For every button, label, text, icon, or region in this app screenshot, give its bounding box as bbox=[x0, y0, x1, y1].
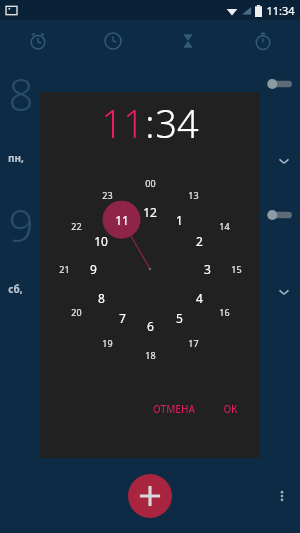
button[interactable]: 14 bbox=[213, 215, 235, 237]
staticText: 20 bbox=[71, 306, 82, 318]
staticText: 7 bbox=[119, 310, 126, 326]
button[interactable]: Expand bbox=[276, 284, 292, 300]
button[interactable]: 21 bbox=[53, 258, 75, 280]
staticText: 16 bbox=[219, 306, 230, 318]
staticText: 11 bbox=[115, 212, 129, 228]
staticText: : bbox=[145, 97, 155, 149]
staticText: 9 bbox=[8, 195, 34, 255]
button[interactable]: 17 bbox=[182, 332, 204, 354]
staticText: 10 bbox=[94, 233, 108, 249]
staticText: 8 bbox=[98, 290, 105, 306]
button[interactable]: 9 bbox=[0, 193, 300, 324]
staticText: 8 bbox=[8, 64, 34, 124]
staticText: 17 bbox=[188, 337, 199, 349]
button[interactable]: 1 bbox=[166, 207, 192, 233]
button[interactable]: 13 bbox=[182, 184, 204, 206]
staticText: 15 bbox=[231, 263, 242, 275]
button[interactable]: Toggle alarm bbox=[266, 78, 292, 90]
button[interactable]: More options bbox=[270, 484, 294, 508]
staticText: 4 bbox=[196, 290, 203, 306]
staticText: 18 bbox=[145, 349, 156, 361]
button[interactable]: 5 bbox=[166, 305, 192, 331]
button[interactable]: 6 bbox=[137, 313, 163, 339]
staticText: 12 bbox=[143, 204, 157, 220]
staticText: 11:34 bbox=[266, 3, 295, 18]
staticText: 6 bbox=[147, 318, 154, 334]
staticText: 14 bbox=[219, 220, 230, 232]
button[interactable]: 8 bbox=[88, 285, 114, 311]
button[interactable]: 34 bbox=[155, 97, 199, 149]
staticText: ОК bbox=[223, 402, 238, 416]
button[interactable]: 7 bbox=[109, 305, 135, 331]
staticText: 13 bbox=[188, 189, 199, 201]
staticText: 23 bbox=[102, 189, 113, 201]
staticText: 19 bbox=[102, 337, 113, 349]
button[interactable]: Timer bbox=[150, 20, 225, 62]
button[interactable]: 00 bbox=[139, 172, 161, 194]
button[interactable]: World clock bbox=[75, 20, 150, 62]
staticText: 22 bbox=[71, 220, 82, 232]
button[interactable]: 23 bbox=[96, 184, 118, 206]
button[interactable]: ОК bbox=[215, 396, 246, 422]
button[interactable]: 11 bbox=[101, 97, 145, 149]
staticText: 1 bbox=[176, 212, 183, 228]
button[interactable]: 4 bbox=[186, 285, 212, 311]
staticText: 00 bbox=[145, 177, 156, 189]
staticText: ОТМЕНА bbox=[153, 402, 195, 416]
button[interactable]: 22 bbox=[65, 215, 87, 237]
button[interactable]: 18 bbox=[139, 344, 161, 366]
staticText: 9 bbox=[90, 261, 97, 277]
button[interactable]: ОТМЕНА bbox=[145, 396, 203, 422]
staticText: сб, bbox=[8, 282, 23, 296]
button[interactable]: 11 bbox=[109, 207, 135, 233]
button[interactable]: Toggle alarm bbox=[266, 209, 292, 221]
button[interactable]: Add alarm bbox=[128, 474, 172, 518]
button[interactable]: 3 bbox=[194, 256, 220, 282]
button[interactable]: Alarm bbox=[0, 20, 75, 62]
staticText: 5 bbox=[176, 310, 183, 326]
button[interactable]: 8 bbox=[0, 62, 300, 193]
staticText: пн, bbox=[8, 151, 24, 165]
staticText: 2 bbox=[196, 233, 203, 249]
button[interactable]: 10 bbox=[88, 228, 114, 254]
button[interactable]: 16 bbox=[213, 301, 235, 323]
staticText: 3 bbox=[204, 261, 211, 277]
button[interactable]: 20 bbox=[65, 301, 87, 323]
button[interactable]: 15 bbox=[225, 258, 247, 280]
button[interactable]: 2 bbox=[186, 228, 212, 254]
button[interactable]: Stopwatch bbox=[225, 20, 300, 62]
button[interactable]: 19 bbox=[96, 332, 118, 354]
button[interactable]: 12 bbox=[137, 199, 163, 225]
button[interactable]: 9 bbox=[80, 256, 106, 282]
button[interactable]: Expand bbox=[276, 153, 292, 169]
staticText: 21 bbox=[59, 263, 70, 275]
